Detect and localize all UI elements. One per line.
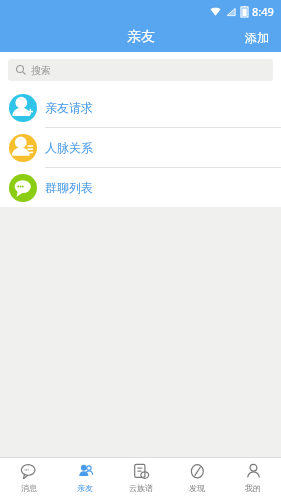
button[interactable]: 搜索 [8, 59, 273, 81]
button[interactable]: 亲友 [57, 458, 113, 500]
staticText: 添加 [245, 30, 269, 45]
button[interactable]: 消息 [0, 458, 57, 500]
staticText: 发现 [189, 483, 205, 493]
staticText: 云族谱 [129, 483, 153, 493]
staticText: 亲友请求 [45, 100, 93, 115]
staticText: 我的 [245, 483, 261, 493]
staticText: 人脉关系 [45, 140, 93, 155]
staticText: 搜索 [31, 64, 51, 77]
staticText: 亲友 [127, 28, 155, 46]
button[interactable]: 人脉关系 [0, 128, 281, 168]
button[interactable]: 添加 [233, 22, 281, 52]
button[interactable]: 发现 [169, 458, 225, 500]
staticText: 群聊列表 [45, 180, 93, 195]
button[interactable]: 亲友请求 [0, 88, 281, 128]
staticText: 亲友 [77, 483, 93, 493]
button[interactable]: 云族谱 [113, 458, 169, 500]
button[interactable]: 群聊列表 [0, 168, 281, 207]
staticText: 8:49 [252, 4, 274, 19]
staticText: 消息 [21, 483, 37, 493]
button[interactable]: 我的 [225, 458, 281, 500]
